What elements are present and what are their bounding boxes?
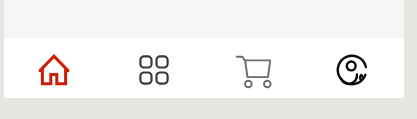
button[interactable]: Home: [4, 38, 104, 98]
button[interactable]: Categories: [104, 38, 204, 98]
button[interactable]: Account: [304, 38, 404, 98]
button[interactable]: Cart: [204, 38, 304, 98]
